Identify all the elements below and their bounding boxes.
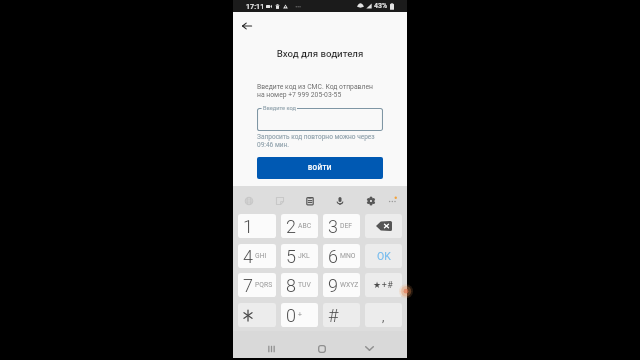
staticText: 9 [328,275,338,296]
button[interactable]: 7 [238,273,276,297]
button[interactable]: 4 [238,244,276,268]
staticText: , [382,310,385,324]
button[interactable]: # [323,303,360,327]
staticText: 17:11 [246,2,265,10]
staticText: + [298,311,302,319]
button[interactable]: Clipboard [303,194,316,207]
staticText: 3 [328,216,338,237]
staticText: WXYZ [340,281,359,289]
staticText: ВОЙТИ [308,164,332,172]
button[interactable]: ВОЙТИ [257,157,383,179]
staticText: ABC [298,222,312,230]
staticText: 0 [286,305,296,326]
button[interactable]: 8 [281,273,318,297]
staticText: JKL [298,252,310,260]
button[interactable]: ★+# [365,273,402,297]
button[interactable]: Backspace [365,214,402,238]
staticText: # [328,305,339,326]
button[interactable]: 9 [323,273,360,297]
staticText: MNO [340,252,356,260]
staticText: GHI [255,252,267,260]
button[interactable]: Recent apps [263,341,279,357]
staticText: OK [377,250,391,262]
button[interactable]: OK [365,244,402,268]
button[interactable]: 6 [323,244,360,268]
button[interactable]: Back [238,17,256,35]
staticText: ★+# [373,280,394,291]
staticText: 43% [374,2,388,10]
staticText: Вход для водителя [233,48,407,59]
button[interactable]: 1 [238,214,276,238]
staticText: 7 [243,275,253,296]
staticText: 1 [243,216,253,237]
staticText: PQRS [255,281,273,289]
button[interactable]: 2 [281,214,318,238]
button[interactable]: 0 [281,303,318,327]
staticText: DEF [340,222,353,230]
staticText: 5 [286,246,296,267]
button[interactable]: Language [242,194,255,207]
staticText: Запросить код повторно можно через 09:46… [257,133,387,148]
staticText: 6 [328,246,338,267]
button[interactable]: Home [314,341,330,357]
button[interactable]: Settings [364,194,377,207]
staticText: TUV [298,281,311,289]
button[interactable]: Введите код [257,108,383,131]
button[interactable]: 3 [323,214,360,238]
button[interactable]: Stickers [273,194,286,207]
button[interactable]: , [365,303,402,327]
button[interactable] [238,303,276,327]
button[interactable]: Hide keyboard [361,340,377,356]
button[interactable]: Voice input [333,194,346,207]
staticText: Введите код из СМС. Код отправлен на ном… [257,83,384,98]
staticText: Введите код [263,105,296,112]
staticText: 8 [286,275,296,296]
button[interactable]: 5 [281,244,318,268]
button[interactable]: More options [387,195,398,206]
staticText: 2 [286,216,296,237]
staticText: 4 [243,246,253,267]
